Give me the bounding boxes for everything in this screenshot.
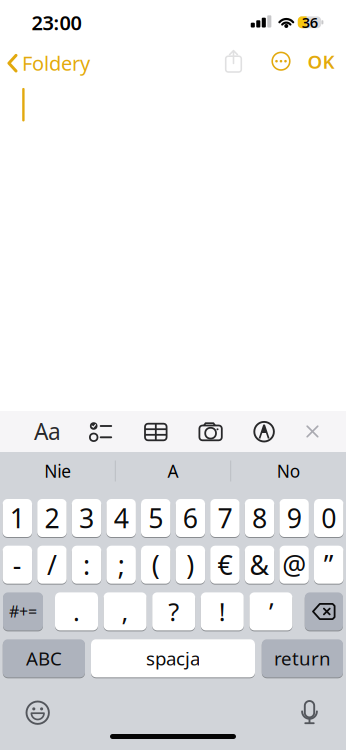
staticText: ” [324, 547, 334, 582]
staticText: ( [152, 547, 160, 582]
staticText: , [122, 595, 129, 628]
staticText: & [250, 547, 270, 582]
staticText: . [73, 595, 80, 628]
staticText: ’ [269, 595, 273, 628]
staticText: : [83, 547, 90, 582]
staticText: 9 [287, 500, 302, 536]
staticText: / [47, 547, 57, 582]
staticText: ! [219, 595, 226, 628]
staticText: @ [282, 547, 306, 582]
staticText: 4 [114, 500, 129, 536]
staticText: spacja [146, 646, 200, 671]
staticText: Nie [44, 459, 71, 482]
staticText: 6 [183, 500, 198, 536]
staticText: 0 [321, 500, 336, 536]
staticText: Aa [34, 416, 61, 446]
staticText: 8 [252, 500, 267, 536]
staticText: 2 [44, 500, 59, 536]
staticText: A [167, 459, 178, 482]
staticText: ? [168, 595, 179, 628]
staticText: No [277, 459, 300, 482]
staticText: ABC [26, 646, 62, 671]
staticText: return [274, 646, 331, 671]
staticText: 36 [302, 13, 318, 32]
staticText: #+= [9, 601, 37, 622]
staticText: 3 [79, 500, 94, 536]
staticText: 7 [217, 500, 232, 536]
staticText: 1 [10, 500, 25, 536]
staticText: € [217, 547, 232, 582]
staticText: ) [186, 547, 194, 582]
staticText: OK [307, 49, 334, 74]
staticText: 23:00 [31, 9, 81, 36]
staticText: ; [118, 547, 125, 582]
staticText: Foldery [22, 50, 90, 76]
staticText: - [13, 547, 22, 582]
staticText: 5 [148, 500, 163, 536]
